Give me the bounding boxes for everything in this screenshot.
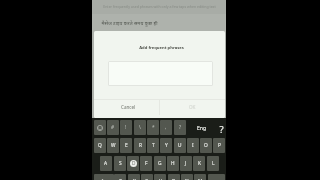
staticText: \	[139, 124, 141, 131]
button[interactable]: P	[213, 138, 225, 153]
button[interactable]: Q	[94, 138, 106, 153]
staticText: J	[185, 160, 187, 167]
staticText: T	[152, 142, 155, 149]
staticText: #	[111, 124, 115, 131]
staticText: W	[111, 142, 116, 149]
button[interactable]: O	[200, 138, 212, 153]
button[interactable]: K	[193, 156, 205, 171]
staticText: P	[218, 142, 221, 149]
button[interactable]: G	[154, 156, 166, 171]
button[interactable]: E	[120, 138, 132, 153]
staticText: ,	[165, 124, 167, 131]
staticText: Y	[165, 142, 168, 149]
staticText: M	[198, 178, 203, 180]
staticText: Eng	[197, 125, 206, 132]
staticText: H	[171, 160, 175, 167]
staticText: U	[178, 142, 182, 149]
button[interactable]: Y	[160, 138, 172, 153]
button[interactable]: N	[181, 174, 193, 180]
staticText: B	[172, 178, 176, 180]
staticText: V	[159, 178, 162, 180]
staticText: A	[104, 160, 108, 167]
button[interactable]: A	[100, 156, 112, 171]
staticText: N	[185, 178, 189, 180]
staticText: S	[119, 160, 122, 167]
button[interactable]: R	[134, 138, 146, 153]
staticText: E	[125, 142, 128, 149]
staticText: K	[198, 160, 201, 167]
staticText: X	[133, 178, 136, 180]
button[interactable]: Shift	[94, 174, 114, 180]
staticText: D	[132, 160, 136, 167]
button[interactable]: F	[140, 156, 152, 171]
staticText: G	[158, 160, 162, 167]
button[interactable]: X	[128, 174, 140, 180]
button[interactable]: J	[180, 156, 192, 171]
button[interactable]: S	[114, 156, 126, 171]
staticText: Enter frequently used phrases with only …	[103, 4, 216, 9]
button[interactable]: !	[120, 120, 132, 135]
button[interactable]: ,	[160, 120, 172, 135]
button[interactable]: I	[187, 138, 199, 153]
button[interactable]: M	[194, 174, 206, 180]
staticText: O	[204, 142, 208, 149]
button[interactable]: B	[168, 174, 180, 180]
staticText: *	[152, 124, 155, 131]
button[interactable]: Z	[114, 174, 126, 180]
button[interactable]: Cancel	[96, 100, 161, 114]
staticText: मैसेज टाइप करते समय कुछ ही	[101, 20, 158, 27]
button[interactable]: ?	[174, 120, 186, 135]
button[interactable]: L	[207, 156, 219, 171]
staticText: ?	[219, 123, 224, 135]
button[interactable]: \	[134, 120, 146, 135]
staticText: Add frequent phrases	[139, 45, 184, 51]
button[interactable]: C	[141, 174, 153, 180]
button[interactable]: T	[147, 138, 159, 153]
staticText: Q	[98, 142, 102, 149]
button[interactable]	[108, 61, 213, 86]
staticText: OK	[189, 104, 196, 110]
staticText: Z	[119, 178, 122, 180]
button[interactable]: W	[107, 138, 119, 153]
button[interactable]: *	[147, 120, 159, 135]
staticText: I	[192, 142, 194, 149]
staticText: ?	[179, 124, 182, 131]
button[interactable]: V	[154, 174, 166, 180]
staticText: C	[145, 178, 149, 180]
button[interactable]: #	[107, 120, 119, 135]
button[interactable]: Emoji	[94, 120, 106, 135]
staticText: Cancel	[121, 104, 136, 110]
button[interactable]: H	[167, 156, 179, 171]
staticText: L	[212, 160, 215, 167]
staticText: R	[139, 142, 142, 149]
button[interactable]: U	[174, 138, 186, 153]
staticText: F	[145, 160, 148, 167]
staticText: !	[125, 124, 127, 131]
button[interactable]	[127, 156, 139, 171]
